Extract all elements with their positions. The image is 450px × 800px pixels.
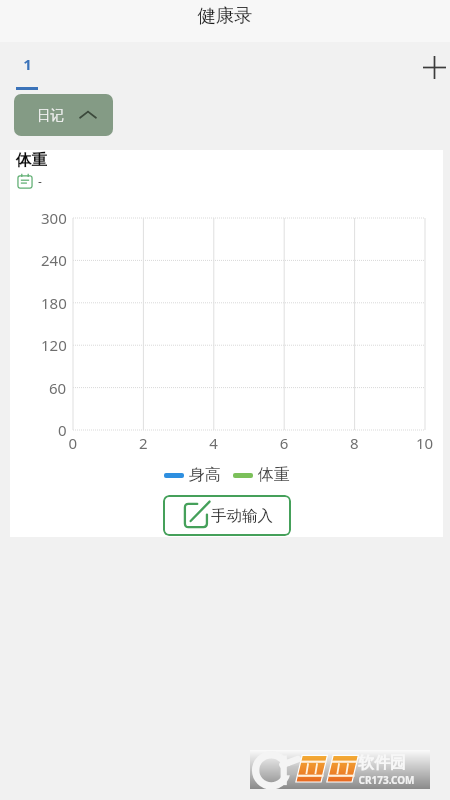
staticText: 体重	[16, 150, 47, 170]
staticText: CR173.COM	[358, 773, 415, 787]
button[interactable]: Add	[416, 49, 450, 85]
button[interactable]: 1	[6, 45, 48, 93]
staticText: 软件园	[358, 753, 406, 773]
staticText: 身高	[189, 465, 221, 485]
staticText: 健康录	[197, 4, 253, 27]
button[interactable]: 日记	[14, 94, 113, 136]
staticText: -	[38, 173, 42, 189]
staticText: 1	[23, 54, 32, 74]
staticText: 手动输入	[211, 506, 273, 526]
staticText: 体重	[258, 465, 290, 485]
button[interactable]: 手动输入	[163, 495, 291, 536]
staticText: 日记	[37, 107, 64, 124]
